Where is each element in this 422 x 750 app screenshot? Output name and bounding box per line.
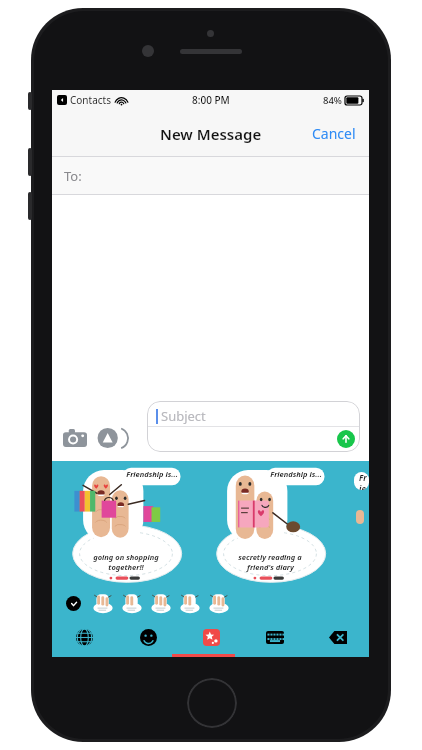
button[interactable]: Globe [52,617,116,657]
button[interactable] [206,591,231,615]
button[interactable] [119,591,144,615]
staticText: friend's diary [247,562,294,572]
staticText: Frie [359,472,369,490]
button[interactable] [177,591,202,615]
button[interactable]: To: [52,157,369,195]
staticText: 8:00 PM [192,93,230,107]
button[interactable] [90,591,115,615]
button[interactable]: Delete [306,617,369,657]
button[interactable]: Camera [60,423,90,453]
staticText: going on shopping [93,552,159,562]
button[interactable]: Stickers [180,617,243,657]
staticText: together!! [108,562,144,572]
button[interactable]: Apps [94,423,124,453]
button[interactable]: Recents [66,596,81,611]
staticText: Contacts [70,93,111,107]
button[interactable]: Keyboard [243,617,306,657]
button[interactable] [148,591,173,615]
staticText: Subject [161,407,206,425]
staticText: Friendship is... [268,469,324,479]
button[interactable]: Friendship is... [68,464,184,586]
button[interactable]: Cancel [299,116,369,151]
button[interactable]: Send [337,430,355,448]
staticText: secretly reading a [238,552,302,562]
button[interactable]: Emoji [116,617,180,657]
staticText: 84% [323,94,342,107]
button[interactable]: Subject [147,401,360,452]
staticText: New Message [160,124,262,144]
staticText: To: [64,167,82,185]
staticText: Cancel [312,124,356,143]
staticText: Friendship is... [124,469,180,479]
button[interactable]: Friendship is... [212,464,328,586]
button[interactable]: Home [187,678,237,728]
button[interactable]: Frie [354,472,369,490]
